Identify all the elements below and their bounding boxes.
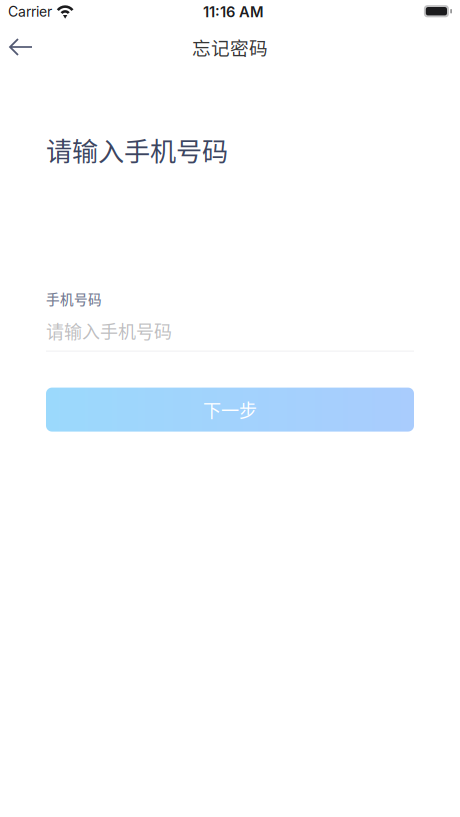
staticText: 忘记密码 xyxy=(192,33,268,60)
staticText: 手机号码 xyxy=(46,289,102,308)
staticText: 请输入手机号码 xyxy=(46,131,228,169)
button[interactable]: 下一步 xyxy=(46,388,414,432)
button[interactable]: Back xyxy=(0,27,44,67)
staticText: 11:16 AM xyxy=(203,3,264,21)
staticText: Carrier xyxy=(8,3,52,20)
staticText: 请输入手机号码 xyxy=(46,317,172,344)
staticText: 下一步 xyxy=(203,396,257,423)
